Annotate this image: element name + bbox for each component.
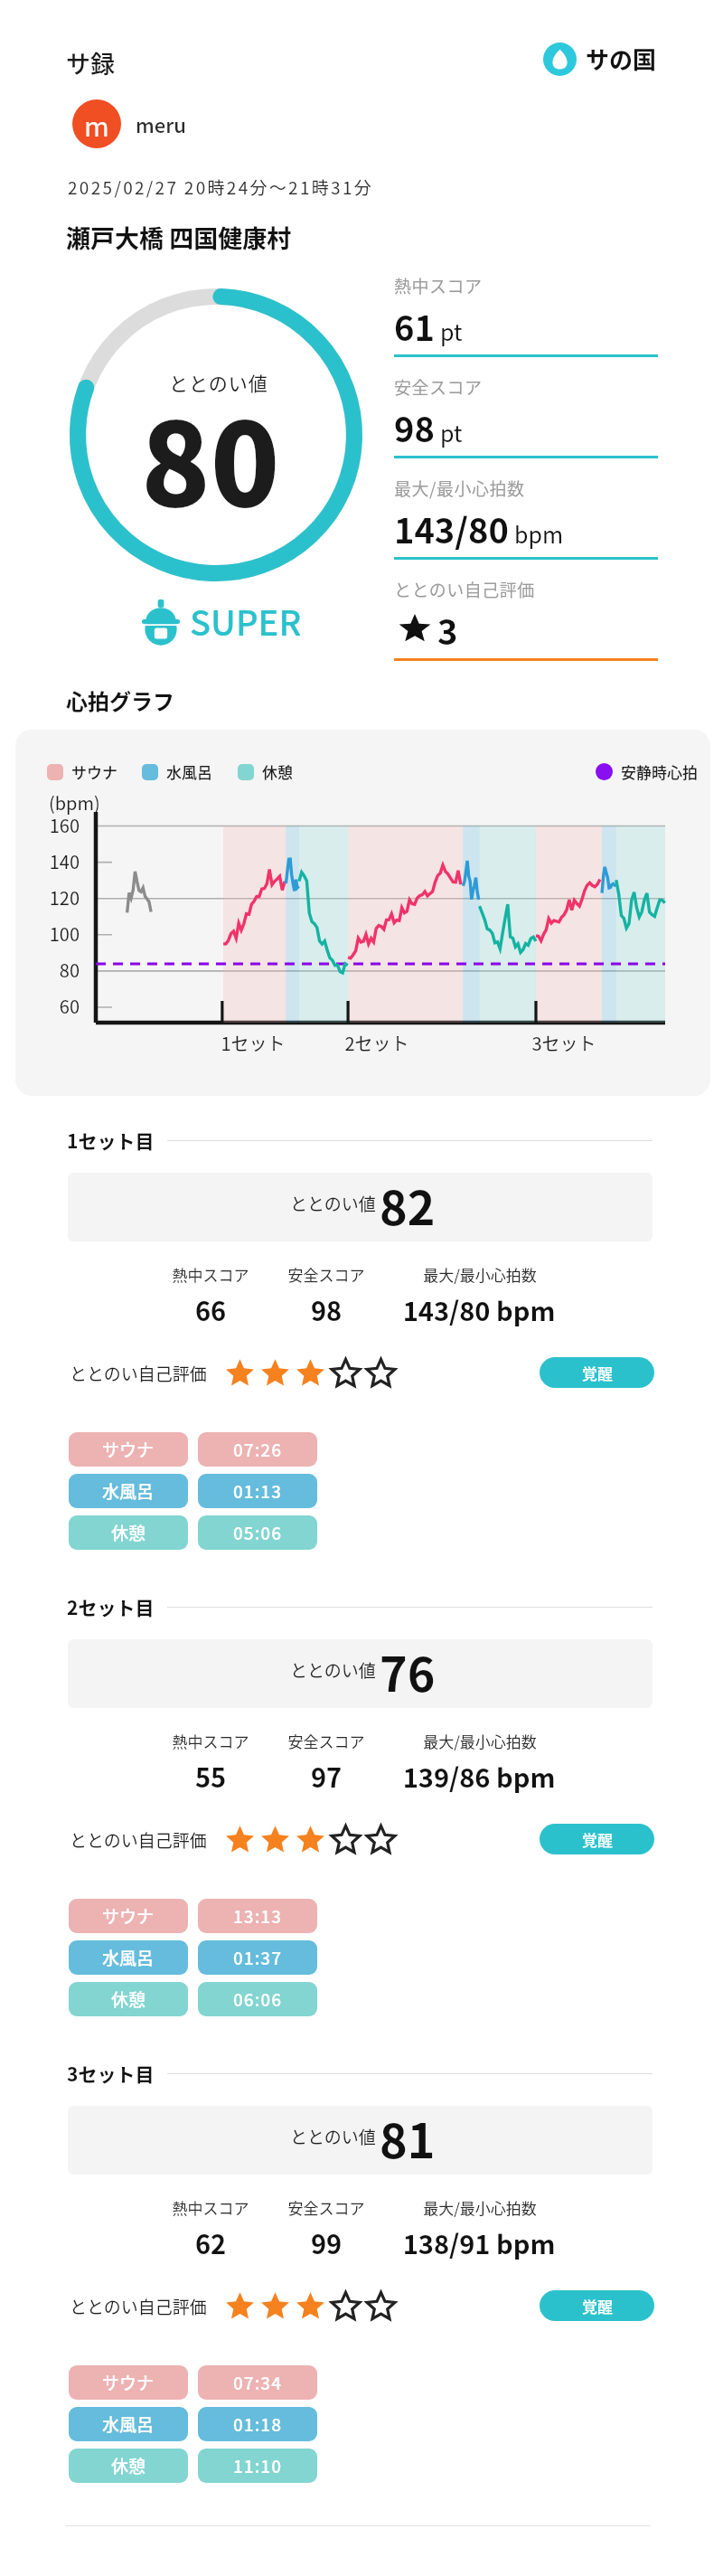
- staticText: 66: [75, 1290, 346, 1328]
- staticText: 80: [141, 374, 280, 539]
- staticText: SUPER: [190, 596, 302, 646]
- staticText: 01:37: [233, 1945, 282, 1970]
- staticText: 安全スコア: [191, 1263, 462, 1286]
- staticText: 61: [394, 301, 435, 351]
- staticText: 60: [15, 993, 80, 1019]
- staticText: ととのい自己評価: [70, 1827, 207, 1853]
- staticText: 3セット目: [67, 2060, 155, 2087]
- staticText: 水風呂: [102, 2411, 155, 2437]
- staticText: 139/86 bpm: [343, 1757, 615, 1795]
- button[interactable]: 覚醒: [540, 1357, 654, 1388]
- staticText: 休憩: [111, 1520, 146, 1545]
- staticText: ととのい値: [169, 369, 268, 396]
- staticText: ととのい値: [290, 2124, 376, 2149]
- staticText: 安静時心拍: [621, 760, 698, 783]
- staticText: サウナ: [102, 1903, 155, 1929]
- staticText: 最大/最小心拍数: [394, 476, 525, 501]
- staticText: 98: [394, 402, 435, 452]
- staticText: 覚醒: [582, 2295, 613, 2317]
- staticText: 最大/最小心拍数: [344, 1730, 615, 1752]
- staticText: 休憩: [111, 2453, 146, 2478]
- staticText: 140: [15, 848, 80, 874]
- staticText: 3: [437, 605, 458, 655]
- staticText: サの国: [586, 42, 657, 76]
- staticText: 心拍グラフ: [66, 684, 174, 716]
- staticText: 熱中スコア: [394, 273, 483, 298]
- staticText: 06:06: [233, 1986, 282, 2012]
- staticText: 55: [75, 1757, 346, 1795]
- staticText: 05:06: [233, 1520, 282, 1545]
- staticText: 143/80 bpm: [343, 1290, 615, 1328]
- staticText: 覚醒: [582, 1362, 613, 1384]
- staticText: 76: [380, 1639, 436, 1705]
- staticText: 2セット目: [67, 1593, 155, 1620]
- staticText: m: [84, 105, 109, 144]
- staticText: 2セット: [305, 1030, 449, 1056]
- staticText: 100: [15, 920, 80, 947]
- staticText: 99: [191, 2223, 462, 2261]
- staticText: 138/91 bpm: [343, 2223, 615, 2261]
- staticText: 01:18: [233, 2411, 282, 2437]
- staticText: 休憩: [262, 760, 293, 783]
- staticText: 82: [380, 1173, 436, 1239]
- staticText: meru: [136, 109, 186, 138]
- staticText: 97: [191, 1757, 462, 1795]
- staticText: pt: [440, 315, 463, 347]
- button[interactable]: サの国: [543, 42, 657, 76]
- staticText: 07:26: [233, 1437, 282, 1462]
- staticText: 07:34: [233, 2370, 282, 2395]
- staticText: 80: [15, 957, 80, 983]
- staticText: 安全スコア: [394, 374, 483, 400]
- staticText: 休憩: [111, 1986, 146, 2012]
- staticText: 熱中スコア: [75, 1263, 346, 1286]
- staticText: 1セット: [181, 1030, 325, 1056]
- staticText: 1セット目: [67, 1127, 155, 1154]
- staticText: 熱中スコア: [75, 1730, 346, 1752]
- button[interactable]: 覚醒: [540, 2290, 654, 2321]
- button[interactable]: 覚醒: [540, 1824, 654, 1854]
- staticText: 3セット: [492, 1030, 636, 1056]
- staticText: 水風呂: [102, 1945, 155, 1970]
- staticText: 熱中スコア: [75, 2196, 346, 2219]
- staticText: 最大/最小心拍数: [344, 2196, 615, 2219]
- staticText: サ録: [66, 45, 115, 80]
- staticText: ととのい値: [290, 1657, 376, 1683]
- staticText: 2025/02/27 20時24分〜21時31分: [68, 175, 374, 200]
- staticText: 11:10: [233, 2453, 282, 2478]
- staticText: 120: [15, 884, 80, 911]
- staticText: 98: [191, 1290, 462, 1328]
- staticText: 143/80: [394, 504, 509, 553]
- staticText: (bpm): [49, 789, 100, 816]
- staticText: 81: [380, 2106, 436, 2172]
- staticText: サウナ: [102, 2370, 155, 2395]
- staticText: 水風呂: [102, 1478, 155, 1504]
- staticText: サウナ: [71, 760, 117, 783]
- staticText: ととのい自己評価: [70, 1361, 207, 1386]
- staticText: 覚醒: [582, 1828, 613, 1851]
- staticText: 瀬戸大橋 四国健康村: [66, 220, 292, 255]
- staticText: ととのい自己評価: [394, 577, 535, 602]
- staticText: 160: [15, 812, 80, 838]
- staticText: 水風呂: [166, 760, 212, 783]
- staticText: 62: [75, 2223, 346, 2261]
- staticText: 最大/最小心拍数: [344, 1263, 615, 1286]
- staticText: bpm: [514, 517, 564, 550]
- staticText: pt: [440, 416, 463, 448]
- staticText: 安全スコア: [191, 2196, 462, 2219]
- staticText: 01:13: [233, 1478, 282, 1504]
- staticText: 13:13: [233, 1903, 282, 1929]
- staticText: ととのい自己評価: [70, 2294, 207, 2319]
- staticText: 安全スコア: [191, 1730, 462, 1752]
- staticText: ととのい値: [290, 1191, 376, 1216]
- staticText: サウナ: [102, 1437, 155, 1462]
